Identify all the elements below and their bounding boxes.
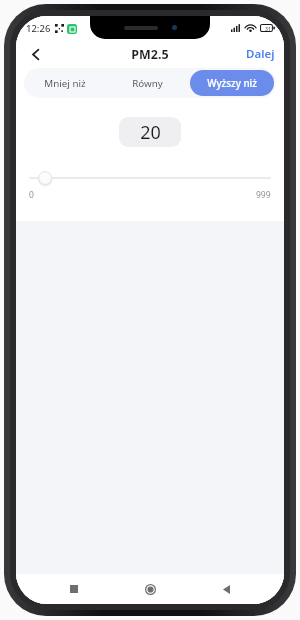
staticText: Wyższy niż — [207, 77, 257, 90]
staticText: 31 — [265, 25, 271, 32]
button[interactable]: Równy — [108, 70, 186, 96]
button[interactable]: Home — [137, 576, 163, 602]
staticText: 999 — [256, 189, 271, 201]
staticText: Równy — [132, 77, 163, 90]
button[interactable]: Recent apps — [61, 576, 87, 602]
button[interactable]: 20 — [119, 117, 181, 147]
button[interactable]: Back — [213, 576, 239, 602]
button[interactable]: Dalej — [237, 42, 284, 66]
staticText: 0 — [29, 189, 34, 201]
staticText: Dalej — [246, 46, 275, 62]
staticText: Mniej niż — [44, 77, 86, 90]
staticText: 12:26 — [26, 22, 51, 35]
button[interactable] — [29, 170, 271, 186]
button[interactable]: Wyższy niż — [190, 70, 274, 96]
button[interactable]: Mniej niż — [26, 70, 104, 96]
staticText: 20 — [140, 120, 161, 145]
button[interactable]: Back — [22, 41, 48, 67]
staticText: PM2.5 — [131, 46, 169, 63]
